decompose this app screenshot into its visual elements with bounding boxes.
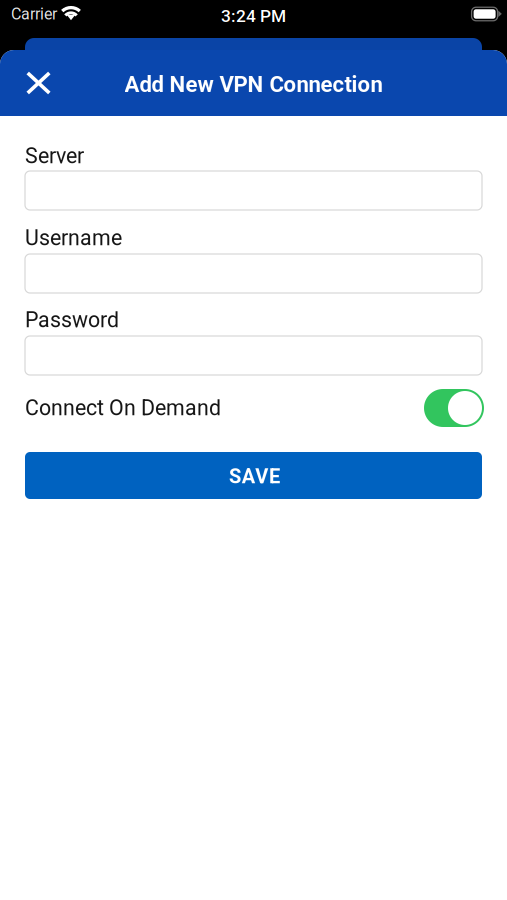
button[interactable]: Close bbox=[12, 57, 64, 109]
staticText: Carrier bbox=[11, 5, 57, 23]
staticText: Add New VPN Connection bbox=[124, 71, 382, 97]
staticText: 3:24 PM bbox=[221, 6, 286, 26]
staticText: Server bbox=[25, 143, 84, 168]
button[interactable]: SAVE bbox=[25, 452, 482, 499]
button[interactable]: Connect On Demand bbox=[25, 389, 482, 427]
staticText: Password bbox=[25, 307, 119, 332]
staticText: Username bbox=[25, 225, 122, 250]
staticText: SAVE bbox=[229, 465, 280, 488]
staticText: Connect On Demand bbox=[25, 395, 221, 420]
